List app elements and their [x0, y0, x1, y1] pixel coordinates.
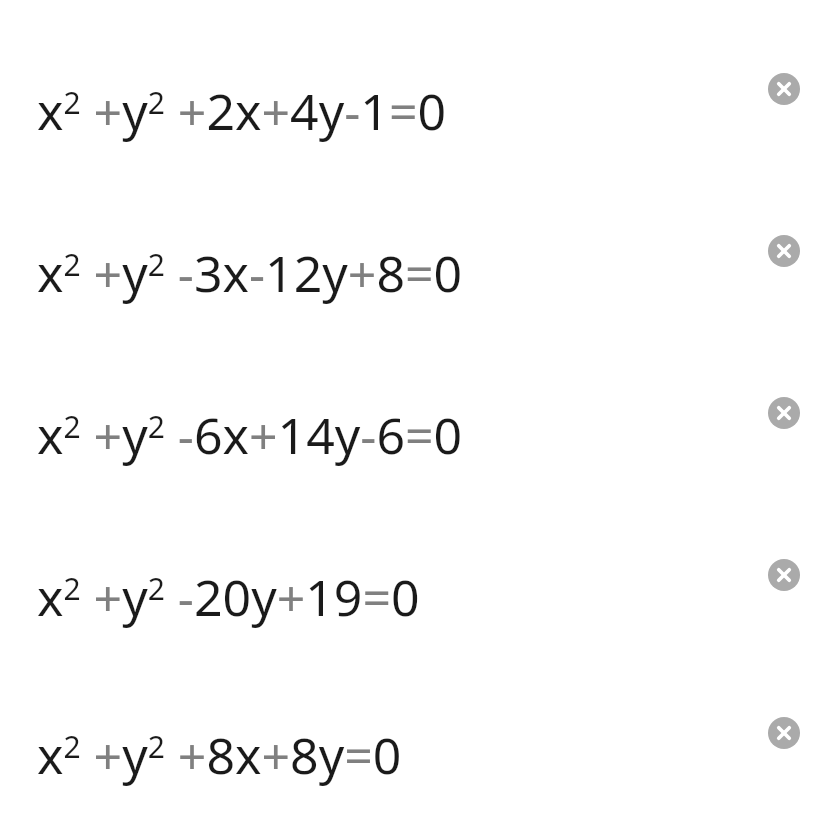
button[interactable]: Delete equation [758, 387, 810, 439]
button[interactable]: x2 +y2 -20y+19=0 [0, 510, 826, 672]
staticText: x2 +y2 -6x+14y-6=0 [37, 401, 463, 469]
staticText: x2 +y2 +2x+4y-1=0 [37, 77, 447, 145]
button[interactable]: Delete equation [758, 707, 810, 759]
staticText: x2 +y2 -20y+19=0 [37, 563, 420, 631]
button[interactable]: Delete equation [758, 63, 810, 115]
button[interactable]: Delete equation [758, 549, 810, 601]
button[interactable]: Delete equation [758, 225, 810, 277]
button[interactable]: x2 +y2 -6x+14y-6=0 [0, 348, 826, 510]
staticText: x2 +y2 +8x+8y=0 [37, 721, 402, 789]
button[interactable]: x2 +y2 +2x+4y-1=0 [0, 24, 826, 186]
staticText: x2 +y2 -3x-12y+8=0 [37, 239, 463, 307]
button[interactable]: x2 +y2 -3x-12y+8=0 [0, 186, 826, 348]
button[interactable]: x2 +y2 +8x+8y=0 [0, 672, 826, 826]
